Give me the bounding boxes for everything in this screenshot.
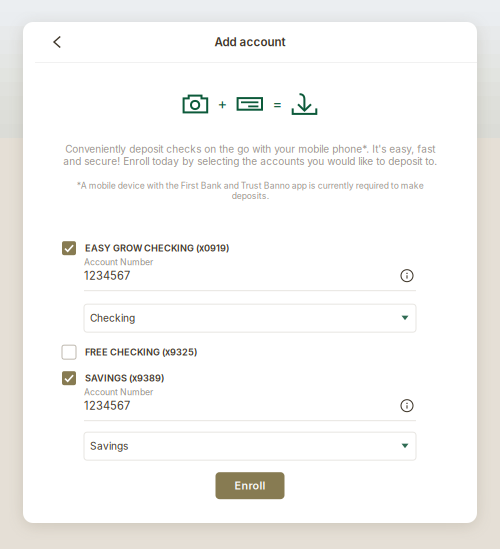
staticText: 1234567	[84, 399, 130, 412]
staticText: Account Number	[84, 387, 153, 397]
staticText: Savings	[90, 440, 128, 452]
staticText: +	[217, 95, 227, 113]
staticText: Conveniently deposit checks on the go wi…	[63, 143, 437, 167]
button[interactable]: Back	[39, 22, 75, 62]
staticText: Account Number	[84, 257, 153, 267]
staticText: =	[272, 95, 282, 113]
button[interactable]: Enroll	[215, 472, 284, 499]
staticText: SAVINGS (x9389)	[85, 373, 164, 384]
staticText: *A mobile device with the First Bank and…	[76, 180, 423, 201]
staticText: EASY GROW CHECKING (x0919)	[85, 243, 229, 254]
staticText: Add account	[214, 35, 285, 49]
staticText: FREE CHECKING (x9325)	[85, 347, 197, 358]
staticText: Enroll	[234, 479, 265, 492]
button[interactable]: About SAVINGS (x9389)	[398, 397, 416, 415]
button[interactable]: Checking	[84, 304, 416, 332]
button[interactable]: Savings	[84, 432, 416, 460]
staticText: 1234567	[84, 269, 130, 282]
button[interactable]: About EASY GROW CHECKING (x0919)	[398, 267, 416, 285]
staticText: Checking	[90, 312, 135, 324]
